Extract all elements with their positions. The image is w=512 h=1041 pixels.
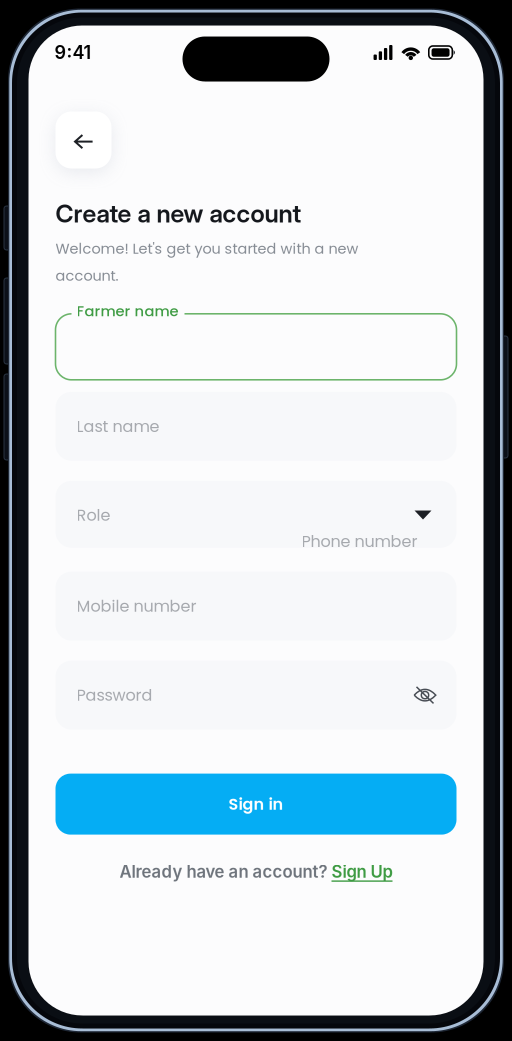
staticText: Password	[76, 684, 152, 706]
staticText: Create a new account	[55, 198, 301, 228]
staticText: Farmer name	[76, 301, 178, 321]
staticText: Phone number	[301, 530, 417, 553]
staticText: Last name	[76, 415, 159, 437]
staticText: Sign Up	[331, 861, 392, 882]
button[interactable]: Back	[55, 111, 111, 168]
staticText: Already have an account?	[119, 861, 331, 882]
staticText: 9:41	[54, 42, 91, 63]
button[interactable]: Already have an account?	[28, 859, 483, 885]
staticText: Mobile number	[76, 595, 196, 617]
staticText: Welcome! Let's get you started with a ne…	[55, 238, 358, 286]
button[interactable]: Sign in	[55, 774, 456, 835]
staticText: Role	[76, 504, 110, 526]
button[interactable]: Show password	[413, 684, 436, 707]
staticText: Sign in	[228, 793, 283, 815]
